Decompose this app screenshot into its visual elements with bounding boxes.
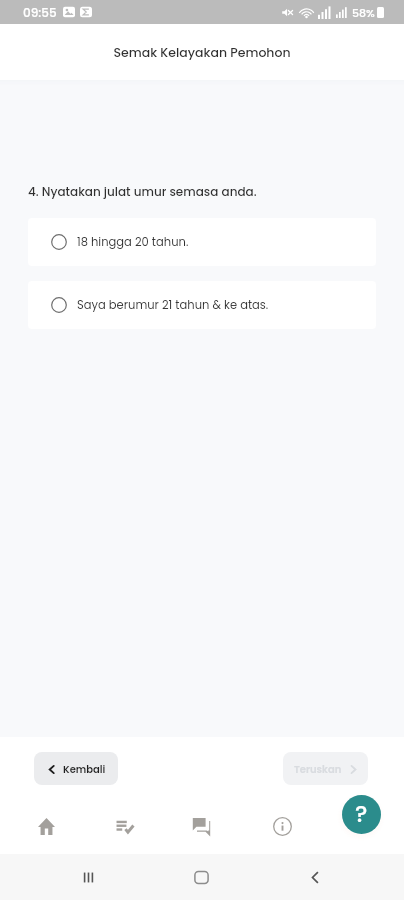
button[interactable]: Kembali — [34, 752, 118, 785]
button[interactable]: Help — [342, 795, 381, 834]
button[interactable]: Messages — [178, 802, 226, 850]
staticText: 18 hingga 20 tahun. — [77, 234, 189, 250]
button[interactable]: 18 hingga 20 tahun. — [28, 218, 376, 266]
button[interactable]: Home — [22, 802, 70, 850]
staticText: Saya berumur 21 tahun & ke atas. — [77, 297, 269, 313]
button[interactable]: Checklist — [100, 802, 148, 850]
staticText: Kembali — [63, 762, 106, 776]
button[interactable]: Back — [292, 855, 338, 899]
button[interactable]: Teruskan — [283, 752, 368, 785]
staticText: 4. Nyatakan julat umur semasa anda. — [28, 183, 257, 200]
staticText: Teruskan — [294, 762, 342, 776]
staticText: 58% — [352, 5, 375, 20]
button[interactable]: Home — [178, 855, 224, 899]
button[interactable]: Information — [258, 802, 306, 850]
button[interactable]: Recents — [65, 855, 111, 899]
staticText: ? — [355, 798, 368, 830]
staticText: 09:55 — [23, 4, 57, 21]
staticText: Semak Kelayakan Pemohon — [113, 44, 291, 61]
button[interactable]: Saya berumur 21 tahun & ke atas. — [28, 281, 376, 329]
